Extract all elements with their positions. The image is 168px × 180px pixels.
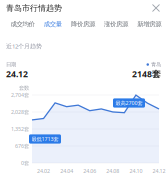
staticText: 2148套 [132, 68, 161, 80]
staticText: 24.10 [129, 167, 142, 175]
staticText: 成交量 [44, 20, 62, 28]
staticText: 24.12 [6, 68, 28, 80]
staticText: 降价房源 [71, 20, 95, 28]
button[interactable]: 成交均价 [10, 20, 34, 28]
staticText: 日期 [6, 61, 16, 68]
staticText: 套数 [19, 85, 29, 91]
staticText: 24.04 [60, 167, 73, 175]
staticText: 近12个月趋势 [6, 42, 42, 50]
staticText: 1,352套 [11, 125, 29, 133]
button[interactable]: 涨价房源 [104, 20, 128, 28]
staticText: 新增房源 [137, 20, 161, 28]
staticText: 青岛市行情趋势 [6, 3, 62, 13]
staticText: 24.08 [106, 167, 119, 175]
staticText: 24.02 [37, 167, 50, 175]
staticText: 最高2700套 [115, 99, 142, 107]
button[interactable]: 降价房源 [71, 20, 95, 28]
staticText: 最低1713套 [31, 135, 58, 143]
staticText: 24.06 [83, 167, 96, 175]
button[interactable]: 新增房源 [137, 20, 161, 28]
staticText: 2,704套 [11, 91, 29, 99]
button[interactable]: 成交量 [44, 20, 62, 28]
staticText: 24.12 [152, 167, 165, 175]
staticText: 0套 [21, 159, 29, 167]
staticText: 2,028套 [11, 108, 29, 116]
staticText: 成交均价 [10, 20, 34, 28]
staticText: 676套 [15, 142, 29, 150]
staticText: 青岛 [151, 61, 161, 68]
button[interactable]: Close [148, 0, 164, 16]
staticText: 涨价房源 [104, 20, 128, 28]
